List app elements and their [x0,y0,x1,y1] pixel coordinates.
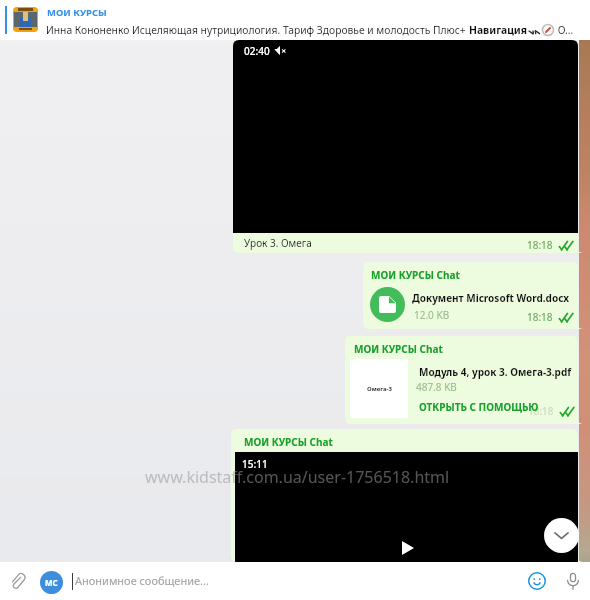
button[interactable]: МОИ КУРСЫ Chat [345,336,583,424]
staticText: Модуль 4, урок 3. Омега-3.pdf [419,365,572,379]
button[interactable]: МОИ КУРСЫ [0,0,590,40]
staticText: 02:40 [244,44,270,58]
button[interactable]: Emoji [524,568,550,594]
staticText: Навигация [469,23,528,37]
staticText: МОИ КУРСЫ Chat [371,268,460,282]
staticText: 18:18 [528,404,554,418]
staticText: Документ Microsoft Word.docx [412,291,570,305]
button[interactable]: МС [40,571,63,594]
button[interactable]: МОИ КУРСЫ Chat [231,429,583,562]
staticText: МОИ КУРСЫ Chat [244,435,333,449]
staticText: МОИ КУРСЫ Chat [354,342,443,356]
staticText: www.kidstaff.com.ua/user-1756518.html [145,466,450,488]
staticText: 18:18 [527,238,553,252]
staticText: 15:11 [242,457,268,471]
staticText: 487.8 KB [416,380,457,394]
staticText: МС [45,577,58,588]
staticText: Анонимное сообщение... [75,573,209,588]
staticText: 12.0 KB [414,308,450,322]
button[interactable]: Scroll to bottom [544,518,579,553]
button[interactable]: Attach file [4,568,30,594]
button[interactable]: 02:40 [233,40,583,253]
staticText: МОИ КУРСЫ [47,6,107,19]
staticText: О... [555,23,574,37]
button[interactable]: ОТКРЫТЬ С ПОМОЩЬЮ [419,400,539,414]
button[interactable]: МОИ КУРСЫ Chat [363,262,583,329]
staticText: Урок 3. Омега [244,236,312,250]
staticText: Омега-3 [367,385,392,393]
staticText: 18:18 [527,310,553,324]
button[interactable]: Record voice message [560,568,586,594]
staticText: Инна Кононенко Исцеляющая нутрициология.… [46,23,469,37]
